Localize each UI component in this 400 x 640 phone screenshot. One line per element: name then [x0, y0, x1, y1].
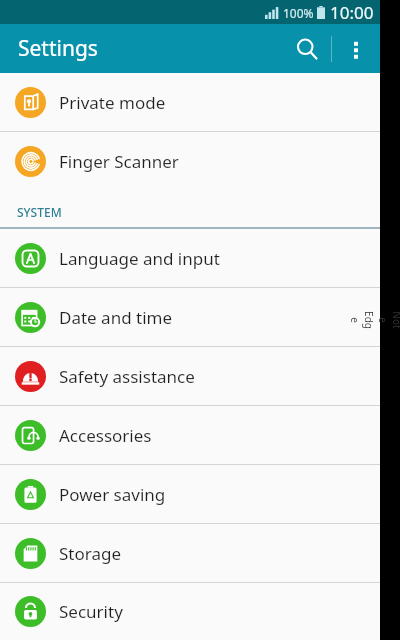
staticText: Accessories	[59, 424, 152, 447]
button[interactable]: Storage	[0, 524, 380, 582]
staticText: Language and input	[59, 247, 220, 270]
staticText: Storage	[59, 542, 122, 565]
staticText: Galaxy Note Edge	[348, 310, 400, 330]
staticText: Safety assistance	[59, 365, 195, 388]
button[interactable]: Language and input	[0, 229, 380, 287]
staticText: 100%	[283, 5, 314, 21]
staticText: Power saving	[59, 483, 166, 506]
button[interactable]: Date and time	[0, 288, 380, 346]
button[interactable]: Finger Scanner	[0, 132, 380, 190]
button[interactable]: Safety assistance	[0, 347, 380, 405]
staticText: Security	[59, 600, 123, 623]
button[interactable]: Security	[0, 583, 380, 640]
staticText: Finger Scanner	[59, 150, 179, 173]
staticText: Settings	[18, 34, 98, 63]
button[interactable]: Private mode	[0, 73, 380, 131]
button[interactable]: Power saving	[0, 465, 380, 523]
staticText: 10:00	[330, 1, 374, 24]
button[interactable]: Search	[283, 25, 331, 73]
button[interactable]: Accessories	[0, 406, 380, 464]
button[interactable]: More options	[332, 25, 380, 73]
staticText: Private mode	[59, 91, 166, 114]
staticText: Date and time	[59, 306, 173, 329]
staticText: SYSTEM	[17, 204, 62, 220]
